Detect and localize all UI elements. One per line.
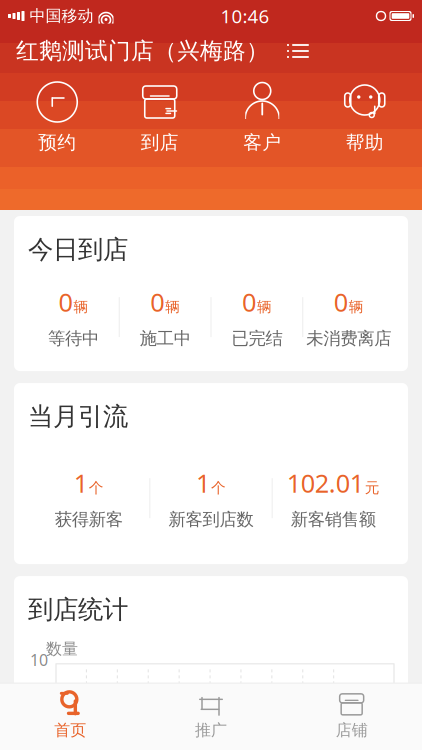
staticText: 新客到店数: [168, 509, 253, 530]
staticText: 获得新客: [55, 509, 123, 530]
staticText: 已完结: [231, 328, 282, 349]
staticText: 个: [89, 479, 104, 497]
staticText: 0: [150, 285, 164, 319]
staticText: 个: [211, 479, 226, 497]
staticText: 102.01: [287, 466, 364, 500]
staticText: 1: [74, 466, 88, 500]
staticText: 帮助: [346, 131, 384, 154]
button[interactable]: 推广: [141, 685, 281, 746]
staticText: 预约: [38, 131, 76, 154]
staticText: 中国移动: [29, 6, 93, 26]
staticText: 辆: [165, 298, 180, 316]
staticText: 数量: [46, 639, 78, 659]
staticText: 元: [365, 479, 380, 497]
staticText: 辆: [257, 298, 272, 316]
staticText: 0: [334, 285, 348, 319]
button[interactable]: 店铺: [281, 685, 422, 746]
staticText: 首页: [54, 720, 86, 740]
staticText: 未消费离店: [306, 328, 391, 349]
button[interactable]: 帮助: [313, 78, 416, 156]
staticText: 今日到店: [28, 234, 128, 265]
staticText: 店铺: [336, 720, 368, 740]
staticText: 1: [196, 466, 210, 500]
staticText: 10: [30, 649, 48, 670]
staticText: 推广: [195, 720, 227, 740]
staticText: 到店统计: [28, 594, 128, 625]
button[interactable]: 到店: [108, 78, 211, 156]
staticText: 施工中: [140, 328, 191, 349]
button[interactable]: 首页: [0, 685, 141, 746]
staticText: 10:46: [220, 4, 269, 28]
staticText: 新客销售额: [291, 509, 376, 530]
staticText: 红鹅测试门店（兴梅路）: [16, 37, 269, 65]
button[interactable]: 客户: [211, 78, 313, 156]
button[interactable]: 预约: [6, 78, 108, 156]
staticText: 等待中: [48, 328, 99, 349]
staticText: 0: [58, 285, 72, 319]
staticText: 客户: [243, 131, 281, 154]
staticText: 到店: [141, 131, 179, 154]
staticText: 辆: [349, 298, 364, 316]
staticText: 当月引流: [28, 401, 128, 432]
button[interactable]: 菜单: [279, 36, 317, 66]
staticText: 0: [242, 285, 256, 319]
staticText: 辆: [73, 298, 88, 316]
